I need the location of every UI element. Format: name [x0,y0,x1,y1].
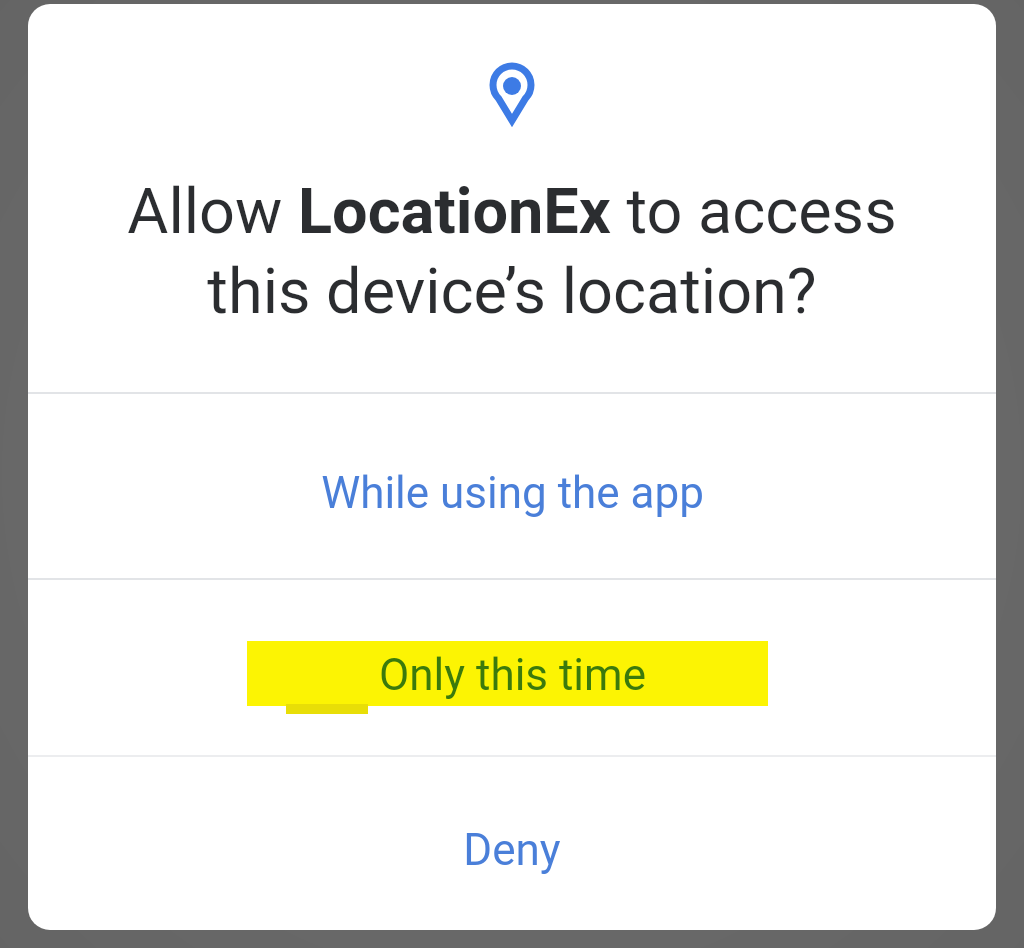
staticText: Allow LocationEx to access this device’s… [28,175,996,329]
button[interactable]: While using the app [28,394,996,578]
staticText: While using the app [321,467,704,519]
staticText: Deny [463,824,561,876]
staticText: Only this time [379,649,646,701]
button[interactable]: Only this time [28,580,996,755]
button[interactable]: Deny [28,757,996,930]
